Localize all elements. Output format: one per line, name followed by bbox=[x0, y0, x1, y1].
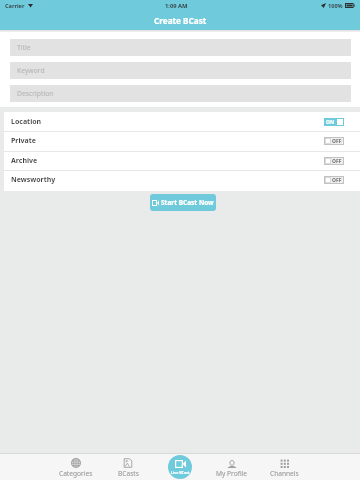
staticText: OFF bbox=[332, 158, 342, 165]
staticText: Title bbox=[17, 43, 31, 52]
button[interactable]: Categories bbox=[50, 453, 102, 480]
staticText: Carrier bbox=[5, 2, 25, 10]
staticText: OFF bbox=[332, 177, 342, 184]
staticText: Description bbox=[17, 89, 54, 98]
staticText: Start BCast Now bbox=[161, 198, 214, 207]
staticText: OFF bbox=[332, 138, 342, 145]
button[interactable]: Toggle on bbox=[324, 118, 344, 126]
button[interactable]: Toggle off bbox=[324, 157, 344, 165]
staticText: Archive bbox=[11, 156, 38, 166]
button[interactable]: Location bbox=[4, 112, 360, 132]
staticText: My Profile bbox=[216, 469, 248, 478]
button[interactable]: Live BCast bbox=[168, 455, 192, 479]
button[interactable]: Description bbox=[10, 85, 351, 102]
staticText: Private bbox=[11, 136, 36, 146]
staticText: Newsworthy bbox=[11, 175, 56, 185]
button[interactable]: Private bbox=[4, 131, 360, 151]
staticText: Channels bbox=[270, 469, 299, 478]
staticText: Keyword bbox=[17, 66, 45, 75]
staticText: Live BCast bbox=[171, 470, 190, 475]
button[interactable]: My Profile bbox=[206, 453, 258, 480]
button[interactable]: Channels bbox=[258, 453, 310, 480]
button[interactable]: Toggle off bbox=[324, 176, 344, 184]
staticText: Create BCast bbox=[154, 15, 207, 26]
staticText: BCasts bbox=[118, 469, 139, 478]
button[interactable]: Archive bbox=[4, 151, 360, 171]
staticText: 1:09 AM bbox=[165, 2, 188, 10]
button[interactable]: Keyword bbox=[10, 62, 351, 79]
staticText: Categories bbox=[59, 469, 93, 478]
staticText: Location bbox=[11, 117, 42, 127]
button[interactable]: Toggle off bbox=[324, 137, 344, 145]
staticText: 100% bbox=[328, 2, 343, 10]
button[interactable]: Newsworthy bbox=[4, 170, 360, 190]
button[interactable]: BCasts bbox=[102, 453, 154, 480]
button[interactable]: Start BCast Now bbox=[150, 194, 216, 211]
staticText: ON bbox=[326, 119, 335, 126]
